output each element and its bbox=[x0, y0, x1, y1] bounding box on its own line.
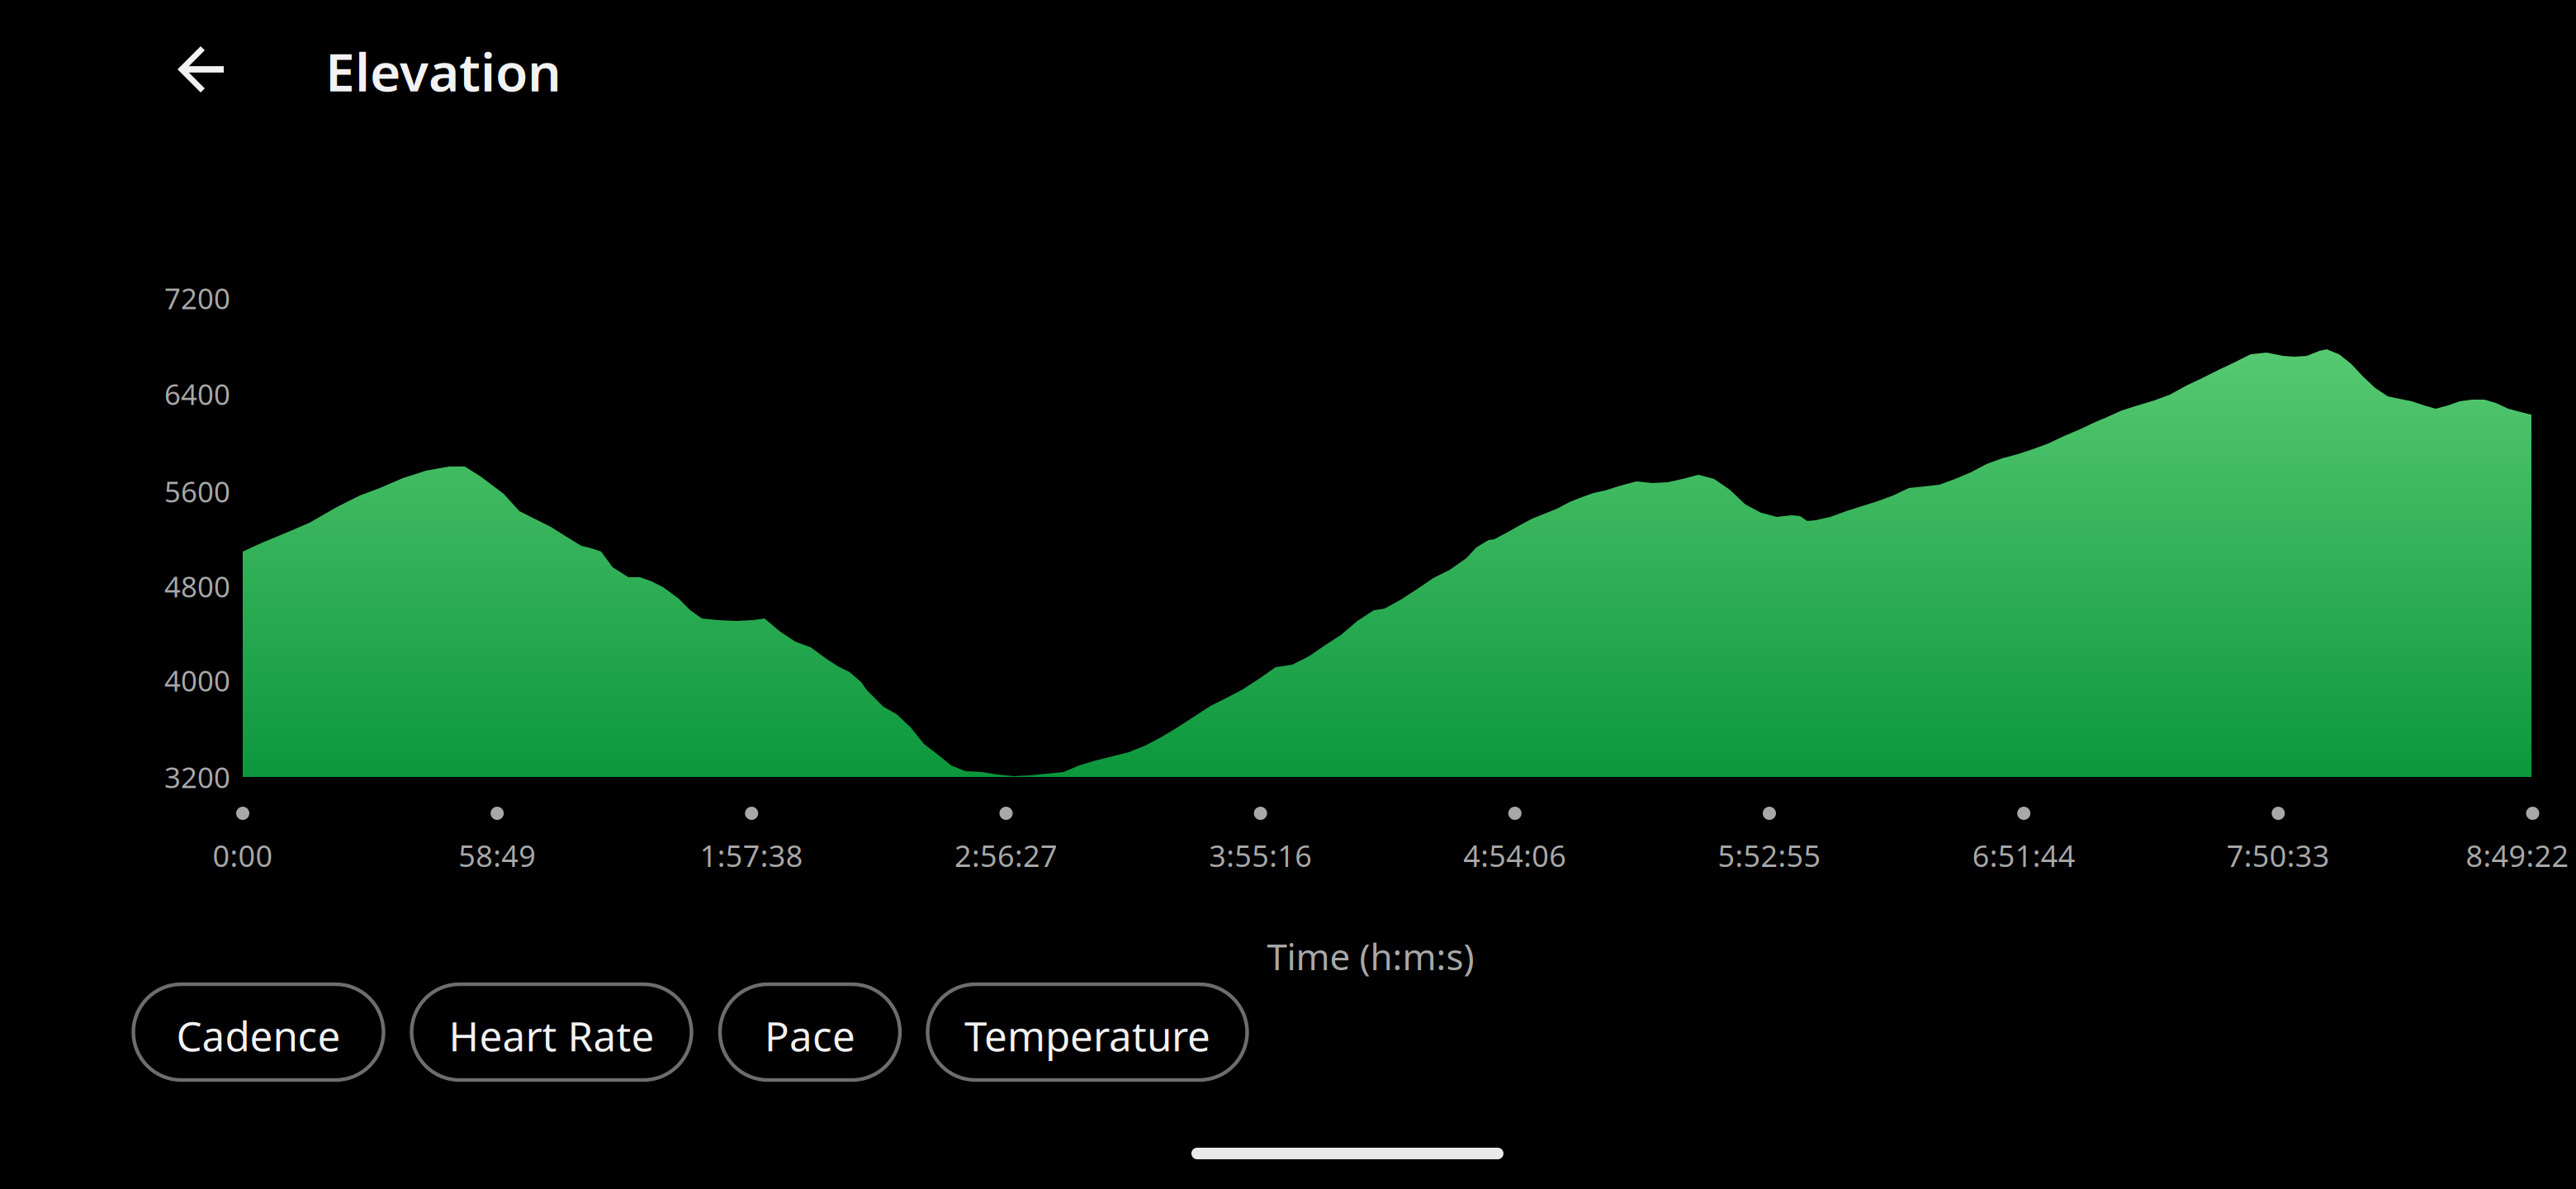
button[interactable]: Heart Rate bbox=[412, 984, 691, 1080]
staticText: 4000 bbox=[164, 661, 230, 699]
staticText: 7200 bbox=[164, 279, 230, 317]
staticText: 6400 bbox=[164, 375, 230, 413]
staticText: 7:50:33 bbox=[2227, 836, 2330, 875]
staticText: 0:00 bbox=[213, 836, 273, 875]
staticText: Heart Rate bbox=[449, 1008, 654, 1062]
button[interactable]: Pace bbox=[720, 984, 900, 1080]
staticText: 8:49:22 bbox=[2466, 836, 2569, 875]
staticText: Time (h:m:s) bbox=[1267, 932, 1474, 980]
staticText: 1:57:38 bbox=[700, 836, 803, 875]
staticText: Pace bbox=[765, 1008, 855, 1062]
staticText: Cadence bbox=[176, 1008, 341, 1062]
staticText: 5600 bbox=[164, 472, 230, 510]
staticText: 3200 bbox=[164, 758, 230, 796]
staticText: Elevation bbox=[325, 36, 561, 106]
button[interactable]: Cadence bbox=[133, 984, 384, 1080]
staticText: 4:54:06 bbox=[1463, 836, 1567, 875]
staticText: 5:52:55 bbox=[1718, 836, 1821, 875]
staticText: 4800 bbox=[164, 567, 230, 605]
button[interactable]: Temperature bbox=[928, 984, 1247, 1080]
staticText: 3:55:16 bbox=[1209, 836, 1312, 875]
staticText: Temperature bbox=[964, 1008, 1210, 1062]
staticText: 58:49 bbox=[458, 836, 536, 875]
staticText: 2:56:27 bbox=[954, 836, 1058, 875]
staticText: 6:51:44 bbox=[1972, 836, 2075, 875]
button[interactable]: Back bbox=[159, 28, 242, 111]
